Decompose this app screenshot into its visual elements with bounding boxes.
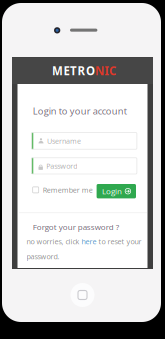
staticText: Login xyxy=(102,186,122,197)
staticText: Password xyxy=(46,161,77,171)
staticText: no worries, click xyxy=(26,237,81,246)
staticText: Login to your account xyxy=(33,105,127,117)
staticText: NIC xyxy=(95,63,116,78)
staticText: password. xyxy=(26,252,59,261)
staticText: METRO xyxy=(52,63,95,78)
staticText: Username xyxy=(47,136,81,146)
button[interactable]: Password xyxy=(32,158,137,174)
staticText: to reset your xyxy=(96,237,141,246)
button[interactable]: Remember me xyxy=(33,185,83,194)
staticText: Remember me xyxy=(43,185,93,195)
staticText: Forgot your password ? xyxy=(33,222,119,232)
button[interactable]: Username xyxy=(32,133,137,149)
button[interactable]: Login xyxy=(97,184,136,198)
staticText: here xyxy=(81,237,96,246)
